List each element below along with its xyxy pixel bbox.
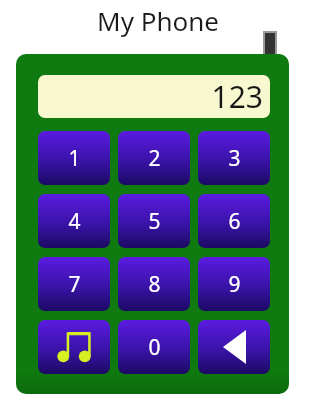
button[interactable]: 1 xyxy=(38,131,110,185)
button[interactable]: Music notes xyxy=(38,320,110,374)
staticText: 4 xyxy=(68,207,81,236)
button[interactable]: 123 xyxy=(38,75,270,118)
staticText: 0 xyxy=(148,333,161,362)
button[interactable]: 4 xyxy=(38,194,110,248)
button[interactable]: 8 xyxy=(118,257,190,311)
staticText: 6 xyxy=(228,207,241,236)
staticText: 7 xyxy=(68,270,81,299)
button[interactable]: 0 xyxy=(118,320,190,374)
staticText: 123 xyxy=(211,76,263,117)
staticText: 5 xyxy=(148,207,161,236)
button[interactable]: 3 xyxy=(198,131,270,185)
button[interactable]: 9 xyxy=(198,257,270,311)
staticText: 1 xyxy=(68,144,81,173)
staticText: 8 xyxy=(148,270,161,299)
staticText: 9 xyxy=(228,270,241,299)
staticText: 3 xyxy=(228,144,241,173)
button[interactable]: 7 xyxy=(38,257,110,311)
button[interactable]: 6 xyxy=(198,194,270,248)
staticText: My Phone xyxy=(97,3,219,38)
button[interactable]: 5 xyxy=(118,194,190,248)
button[interactable]: Backspace xyxy=(198,320,270,374)
staticText: 2 xyxy=(148,144,161,173)
button[interactable]: 2 xyxy=(118,131,190,185)
